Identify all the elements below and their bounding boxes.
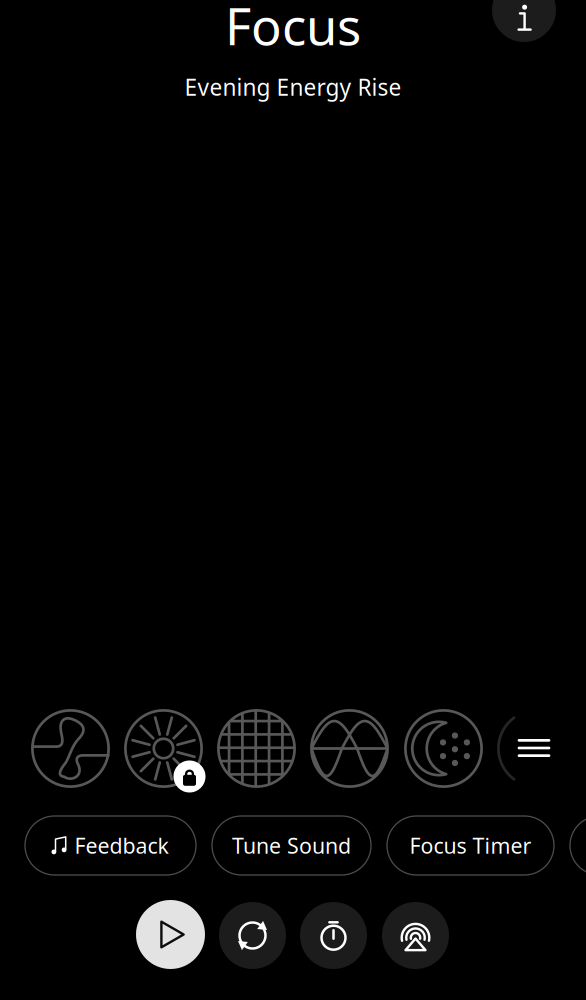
staticText: Focus <box>225 0 361 59</box>
button[interactable]: Waves <box>310 709 389 788</box>
button[interactable]: Ambience <box>570 816 586 875</box>
button[interactable]: Focus Timer <box>387 816 554 875</box>
staticText: Tune Sound <box>232 831 351 860</box>
button[interactable]: Night <box>404 709 483 788</box>
staticText: Evening Energy Rise <box>184 72 401 102</box>
button[interactable]: Grid <box>217 709 296 788</box>
button[interactable]: More options <box>503 723 565 773</box>
button[interactable]: Play <box>136 900 205 969</box>
staticText: Feedback <box>74 831 168 860</box>
button[interactable]: Repeat <box>219 902 286 969</box>
button[interactable]: AirPlay <box>382 902 449 969</box>
staticText: Focus Timer <box>409 831 531 860</box>
button[interactable]: Information <box>492 0 556 42</box>
button[interactable]: Flow <box>31 709 110 788</box>
button[interactable]: Feedback <box>25 816 196 875</box>
button[interactable]: Sunrise <box>124 709 203 788</box>
button[interactable]: Sleep timer <box>300 902 367 969</box>
button[interactable]: Tune Sound <box>212 816 371 875</box>
